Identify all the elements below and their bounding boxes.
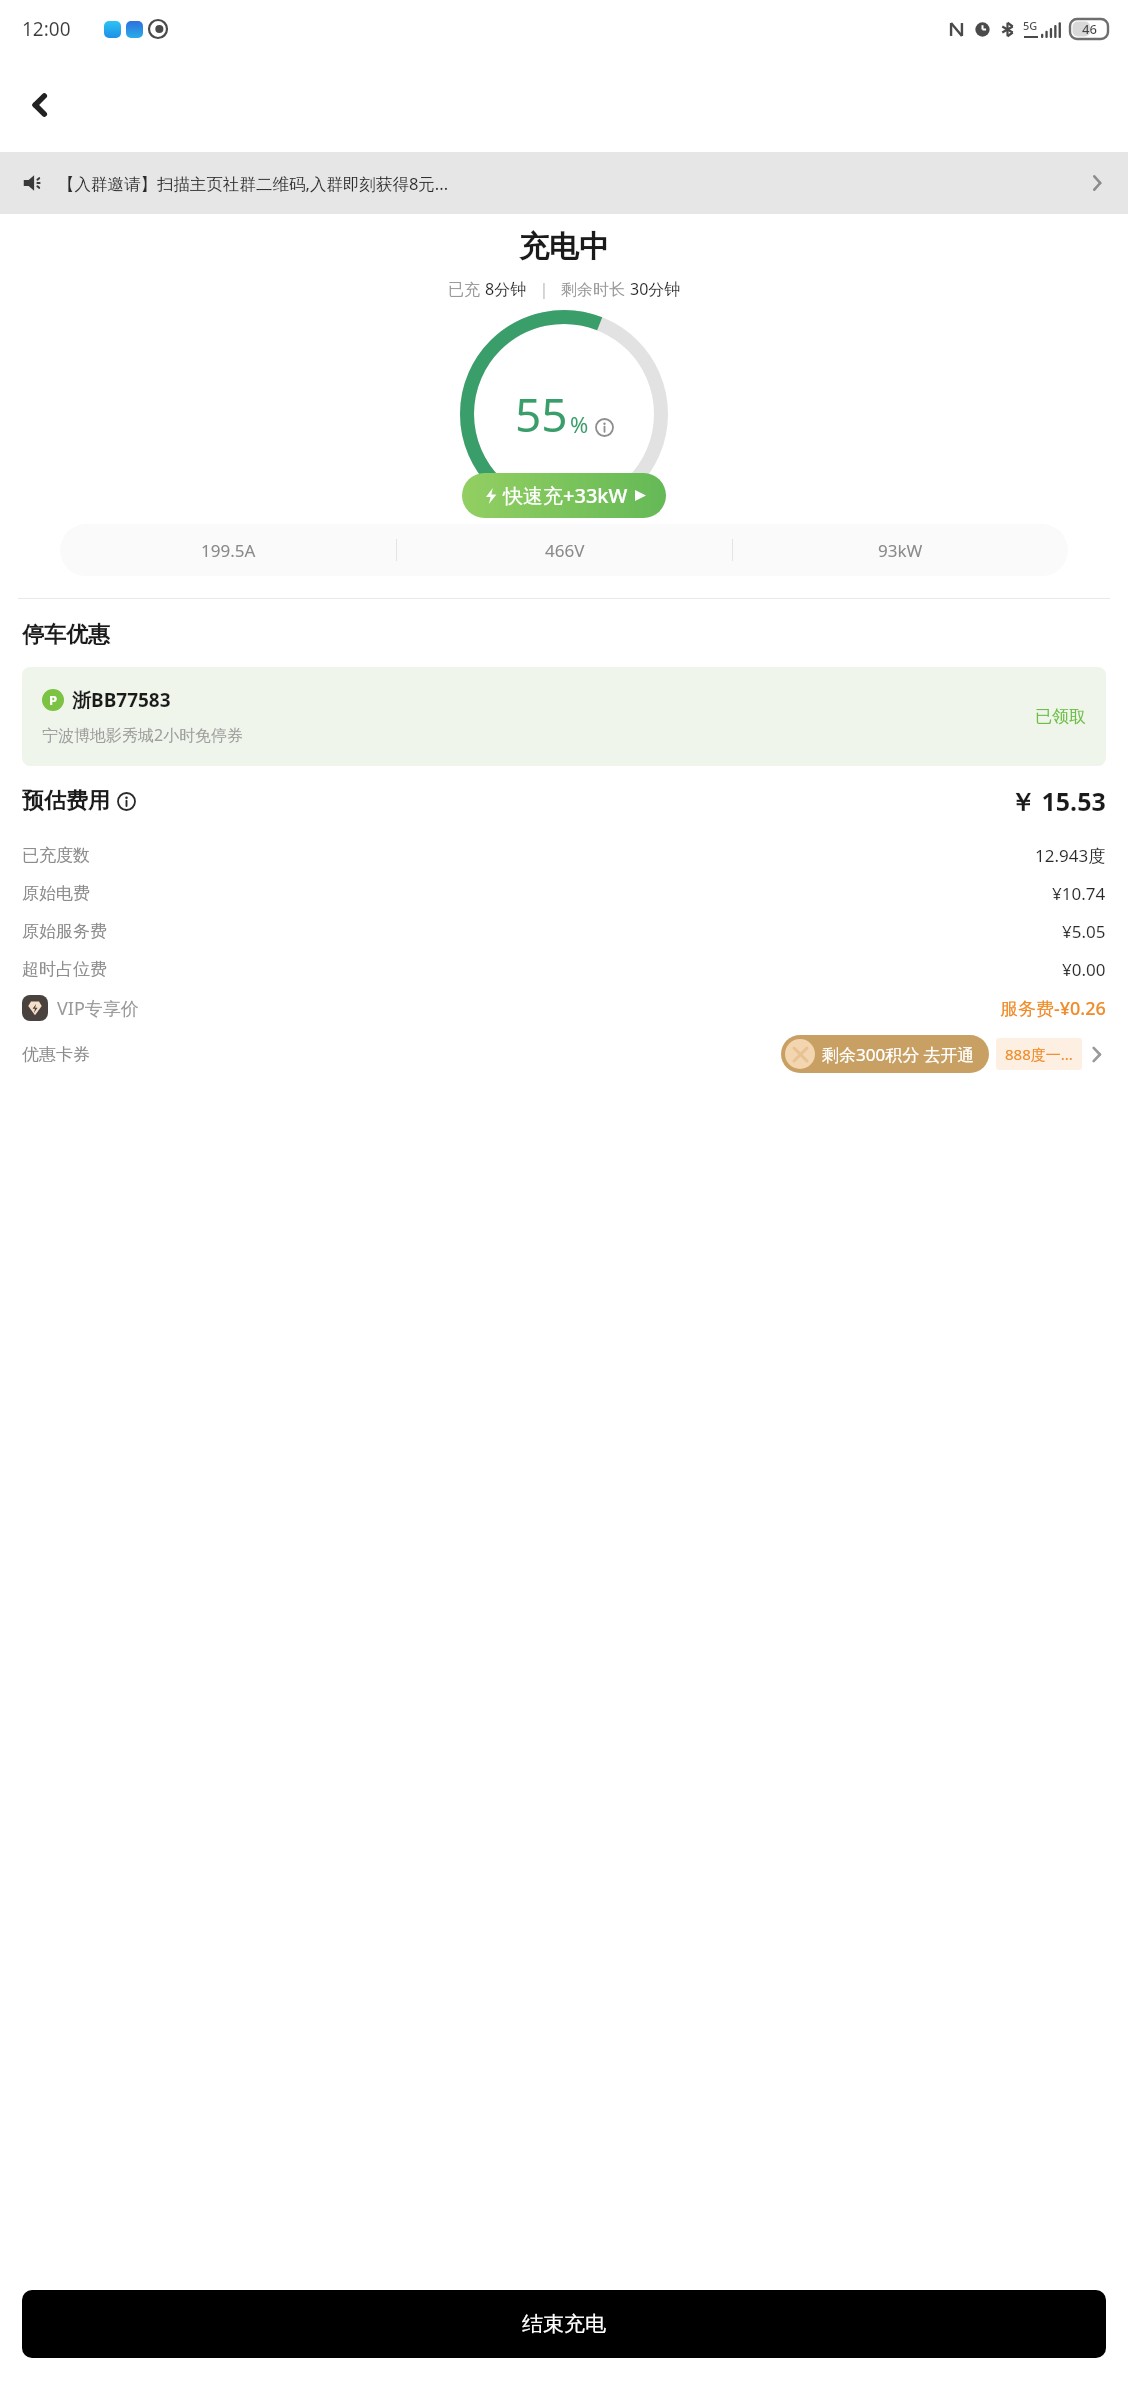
staticText: 结束充电 <box>522 2311 606 2337</box>
staticText: 55 <box>515 383 568 446</box>
staticText: % <box>570 409 589 439</box>
staticText: 快速充+33kW <box>503 482 628 509</box>
staticText: 已充度数 <box>22 845 90 866</box>
button[interactable]: Fee info <box>117 792 136 811</box>
staticText: | <box>527 278 561 300</box>
staticText: 原始服务费 <box>22 921 107 942</box>
staticText: 优惠卡券 <box>22 1044 90 1065</box>
staticText: ￥ 15.53 <box>1010 784 1106 818</box>
staticText: 充电中 <box>519 228 609 266</box>
staticText: 12.943度 <box>1035 844 1106 867</box>
staticText: 宁波博地影秀城2小时免停券 <box>42 724 244 746</box>
staticText: ¥0.00 <box>1062 958 1106 981</box>
button[interactable]: 剩余300积分 去开通 <box>781 1035 989 1073</box>
button[interactable]: Back <box>14 79 66 131</box>
staticText: 服务费-¥0.26 <box>1000 996 1106 1021</box>
staticText: 已领取 <box>1035 706 1086 727</box>
button[interactable]: 888度一... <box>996 1038 1082 1070</box>
button[interactable]: Info <box>595 418 614 437</box>
staticText: 超时占位费 <box>22 959 107 980</box>
button[interactable]: 结束充电 <box>22 2290 1106 2358</box>
staticText: 剩余时长 <box>561 278 630 300</box>
button[interactable]: 【入群邀请】扫描主页社群二维码,入群即刻获得8元... <box>0 152 1128 214</box>
staticText: 199.5A <box>201 539 256 562</box>
staticText: ¥10.74 <box>1052 882 1106 905</box>
staticText: ¥5.05 <box>1062 920 1106 943</box>
staticText: P <box>49 691 58 709</box>
staticText: 466V <box>545 539 585 562</box>
staticText: 888度一... <box>1005 1044 1073 1064</box>
button[interactable]: 快速充+33kW <box>462 473 666 518</box>
staticText: 预估费用 <box>22 787 110 815</box>
staticText: 原始电费 <box>22 883 90 904</box>
staticText: 8分钟 <box>485 278 527 300</box>
button[interactable]: 优惠卡券 <box>22 1028 1106 1080</box>
button[interactable]: VIP专享价 <box>22 988 1106 1028</box>
staticText: 【入群邀请】扫描主页社群二维码,入群即刻获得8元... <box>58 172 1080 195</box>
staticText: 5G <box>1023 18 1038 33</box>
button[interactable]: 199.5A <box>60 524 1068 576</box>
staticText: 12:00 <box>22 16 71 42</box>
staticText: 停车优惠 <box>22 621 110 649</box>
staticText: 30分钟 <box>630 278 681 300</box>
button[interactable]: P <box>22 667 1106 766</box>
staticText: 46 <box>1082 20 1097 38</box>
staticText: 已充 <box>448 278 485 300</box>
staticText: VIP专享价 <box>57 996 139 1021</box>
staticText: 浙BB77583 <box>72 687 171 713</box>
staticText: 93kW <box>878 539 923 562</box>
staticText: 剩余300积分 去开通 <box>822 1043 975 1066</box>
